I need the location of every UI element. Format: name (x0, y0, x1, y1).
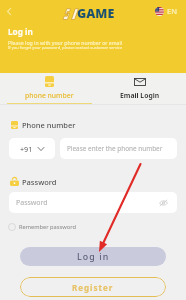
staticText: Password (16, 198, 48, 208)
staticText: phone number (25, 91, 74, 100)
button[interactable]: Show password (157, 197, 169, 209)
staticText: +91 (20, 144, 33, 154)
button[interactable]: Log in (20, 247, 166, 266)
button[interactable]: Please enter the phone number (60, 138, 177, 159)
staticText: Email Login (120, 91, 160, 100)
staticText: EN (167, 6, 177, 16)
button[interactable]: EN (155, 6, 177, 16)
staticText: Please enter the phone number (67, 144, 163, 153)
staticText: Remember password (19, 223, 76, 231)
staticText: Register (72, 282, 114, 293)
button[interactable]: Email Login (93, 73, 186, 105)
button[interactable]: Password (9, 192, 177, 213)
staticText: Phone number (22, 120, 76, 130)
staticText: If you forget your password, please cont… (8, 45, 123, 50)
button[interactable]: Back (2, 4, 16, 18)
staticText: Log in (77, 251, 110, 263)
button[interactable]: Register (20, 277, 166, 297)
staticText: GAME (77, 5, 115, 22)
button[interactable]: phone number (0, 73, 93, 105)
button[interactable]: Remember password (8, 223, 76, 231)
staticText: Log in (8, 26, 33, 37)
staticText: Password (22, 177, 57, 187)
staticText: Please log in with your phone number or … (8, 39, 123, 46)
button[interactable]: +91 (9, 138, 55, 159)
